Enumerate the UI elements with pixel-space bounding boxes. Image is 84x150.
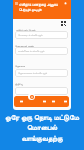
button[interactable]: தொகையை உள்ளிடவும் <box>15 69 68 77</box>
button[interactable]: History <box>51 99 56 104</box>
staticText: குறிப்பு <box>15 83 23 86</box>
button[interactable]: Menu <box>14 1 18 5</box>
staticText: பெறவும் முடியும் <box>19 7 42 12</box>
staticText: மொபைல் எண் <box>15 44 34 47</box>
staticText: எளிதாக பணத்தை அனுப்ப <box>19 2 58 7</box>
button[interactable]: Profile <box>63 99 68 104</box>
staticText: எண்ணை உள்ளிடவும் <box>18 49 45 53</box>
button[interactable]: Notifications <box>63 1 67 5</box>
button[interactable]: Scan QR code <box>61 21 66 26</box>
button[interactable]: Home <box>19 99 24 104</box>
button[interactable]: Pay <box>28 93 35 100</box>
button[interactable] <box>15 87 68 95</box>
button[interactable]: பெயரை உள்ளிடவும் <box>15 31 68 39</box>
button[interactable]: எண்ணை உள்ளிடவும் <box>15 47 68 55</box>
button[interactable]: Offers <box>42 99 47 104</box>
staticText: ஒரே ஒரு நொடி மட்டுமே மொபைல் வாங்குவதற்கு <box>0 112 84 143</box>
staticText: தொகை <box>15 65 25 68</box>
staticText: பெயரை உள்ளிடவும் <box>18 33 43 37</box>
staticText: தொகையை உள்ளிடவும் <box>18 71 48 75</box>
staticText: அனுப்புநர் பெயர் <box>15 28 36 31</box>
